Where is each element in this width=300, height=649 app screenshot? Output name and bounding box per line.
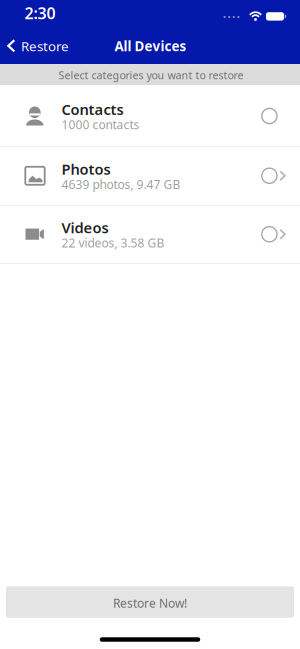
staticText: 22 videos, 3.58 GB <box>61 235 164 251</box>
staticText: 4639 photos, 9.47 GB <box>61 176 180 192</box>
staticText: Restore Now! <box>113 595 187 611</box>
button[interactable]: Videos <box>0 205 300 263</box>
staticText: Contacts <box>61 99 123 119</box>
staticText: All Devices <box>114 37 186 55</box>
button[interactable]: Contacts <box>0 86 300 146</box>
button[interactable]: Restore Now! <box>6 586 294 618</box>
staticText: 1000 contacts <box>61 116 139 132</box>
button[interactable]: Photos <box>0 146 300 205</box>
staticText: Restore <box>21 37 69 55</box>
button[interactable]: Back <box>3 31 83 61</box>
staticText: Videos <box>61 218 108 237</box>
staticText: Select categories you want to restore <box>58 68 243 82</box>
staticText: 2:30 <box>24 2 55 24</box>
staticText: Photos <box>61 159 110 179</box>
